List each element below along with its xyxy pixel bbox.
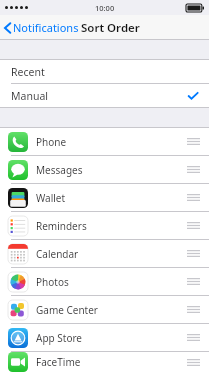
staticText: Calendar: [36, 247, 79, 261]
staticText: Manual: [11, 89, 48, 103]
button[interactable]: Messages: [0, 156, 209, 183]
staticText: Recent: [11, 65, 45, 79]
button[interactable]: Phone: [0, 128, 209, 155]
staticText: Notifications: [13, 20, 79, 35]
staticText: 10:00: [95, 3, 115, 13]
other: Reorder Calendar: [187, 250, 200, 257]
button[interactable]: Notifications: [0, 16, 85, 39]
other: Reorder Messages: [187, 166, 200, 173]
other: Reorder Reminders: [187, 222, 200, 229]
staticText: FaceTime: [36, 355, 81, 369]
button[interactable]: FaceTime: [0, 352, 209, 372]
staticText: Messages: [36, 163, 83, 177]
staticText: Photos: [36, 275, 69, 289]
staticText: Reminders: [36, 219, 87, 233]
other: Reorder Phone: [187, 138, 200, 145]
staticText: Phone: [36, 135, 67, 149]
button[interactable]: Calendar: [0, 240, 209, 267]
button[interactable]: Game Center: [0, 296, 209, 323]
other: Reorder Wallet: [187, 194, 200, 201]
button[interactable]: App Store: [0, 324, 209, 351]
staticText: Sort Order: [81, 20, 140, 36]
other: Reorder Game Center: [187, 306, 200, 313]
other: Reorder Photos: [187, 278, 200, 285]
other: Reorder FaceTime: [187, 359, 200, 366]
button[interactable]: Reminders: [0, 212, 209, 239]
button[interactable]: Wallet: [0, 184, 209, 211]
button[interactable]: Manual: [0, 84, 209, 107]
staticText: Wallet: [36, 191, 66, 205]
button[interactable]: Photos: [0, 268, 209, 295]
other: Reorder App Store: [187, 334, 200, 341]
staticText: App Store: [36, 331, 83, 345]
staticText: Game Center: [36, 303, 98, 317]
button[interactable]: Recent: [0, 60, 209, 83]
